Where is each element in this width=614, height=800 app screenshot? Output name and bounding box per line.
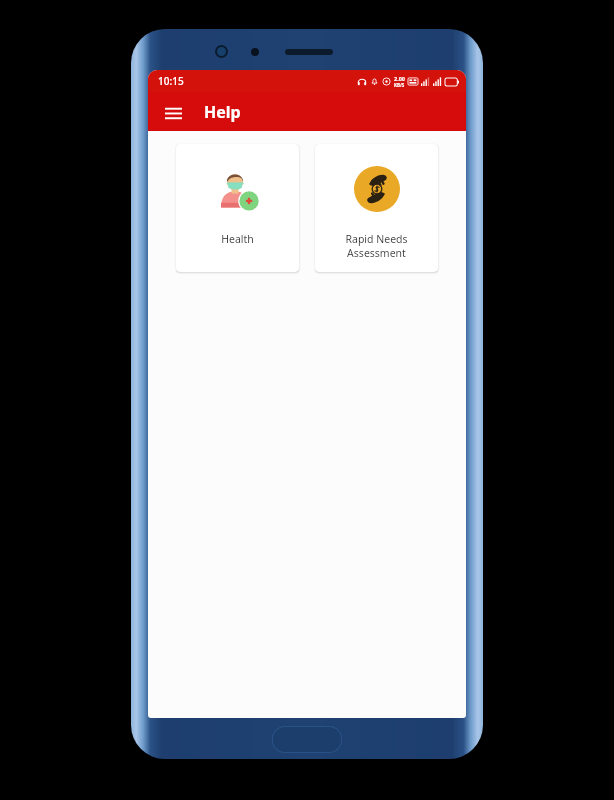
button[interactable]: Health [176, 144, 299, 272]
staticText: Health [221, 232, 254, 246]
staticText: KB/S [394, 82, 405, 88]
staticText: Rapid Needs Assessment [319, 232, 434, 260]
staticText: 10:15 [158, 74, 184, 88]
button[interactable]: Open navigation menu [156, 95, 190, 129]
button[interactable]: Rapid Needs Assessment [315, 144, 438, 272]
staticText: 2.00 [394, 75, 405, 82]
staticText: Help [204, 101, 241, 123]
